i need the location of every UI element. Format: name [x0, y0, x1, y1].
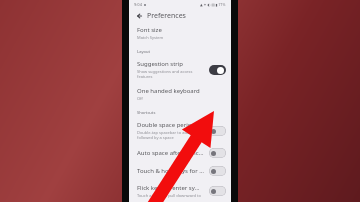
staticText: Flick keys to enter symbols — [137, 184, 205, 192]
staticText: Double space period — [137, 121, 196, 129]
staticText: Touch & hold keys for symbols — [137, 167, 205, 175]
button[interactable]: Back — [134, 11, 144, 21]
button[interactable]: Auto space after punctuation — [129, 144, 231, 162]
button[interactable]: One handed keyboard — [129, 83, 231, 105]
button[interactable]: Toggle off — [209, 166, 226, 176]
staticText: Double-tap spacebar to add period follow… — [137, 130, 203, 140]
button[interactable]: Font size — [129, 22, 231, 44]
staticText: Touch a key and pull downward to enter i… — [137, 193, 205, 198]
staticText: Auto space after punctuation — [137, 149, 205, 157]
staticText: 9:04 — [134, 2, 142, 7]
staticText: Font size — [137, 26, 162, 34]
staticText: Suggestion strip — [137, 60, 184, 68]
staticText: ▲ ✦ ◐ ▤ ▮ 71% — [200, 2, 226, 7]
staticText: Preferences — [147, 11, 186, 21]
staticText: Shortcuts — [137, 110, 156, 115]
button[interactable]: Flick keys to enter symbols — [129, 180, 231, 202]
button[interactable]: Double space period — [129, 117, 231, 144]
staticText: Off — [137, 96, 143, 101]
button[interactable]: Toggle off — [209, 148, 226, 158]
button[interactable]: Toggle on — [209, 65, 226, 75]
button[interactable]: Toggle off — [209, 186, 226, 196]
button[interactable]: Touch & hold keys for symbols — [129, 162, 231, 180]
staticText: Layout — [137, 49, 151, 54]
button[interactable]: Toggle off — [209, 126, 226, 136]
staticText: Match System — [137, 35, 164, 40]
staticText: One handed keyboard — [137, 87, 200, 95]
button[interactable]: Suggestion strip — [129, 56, 231, 83]
staticText: Show suggestions and access features — [137, 69, 205, 79]
